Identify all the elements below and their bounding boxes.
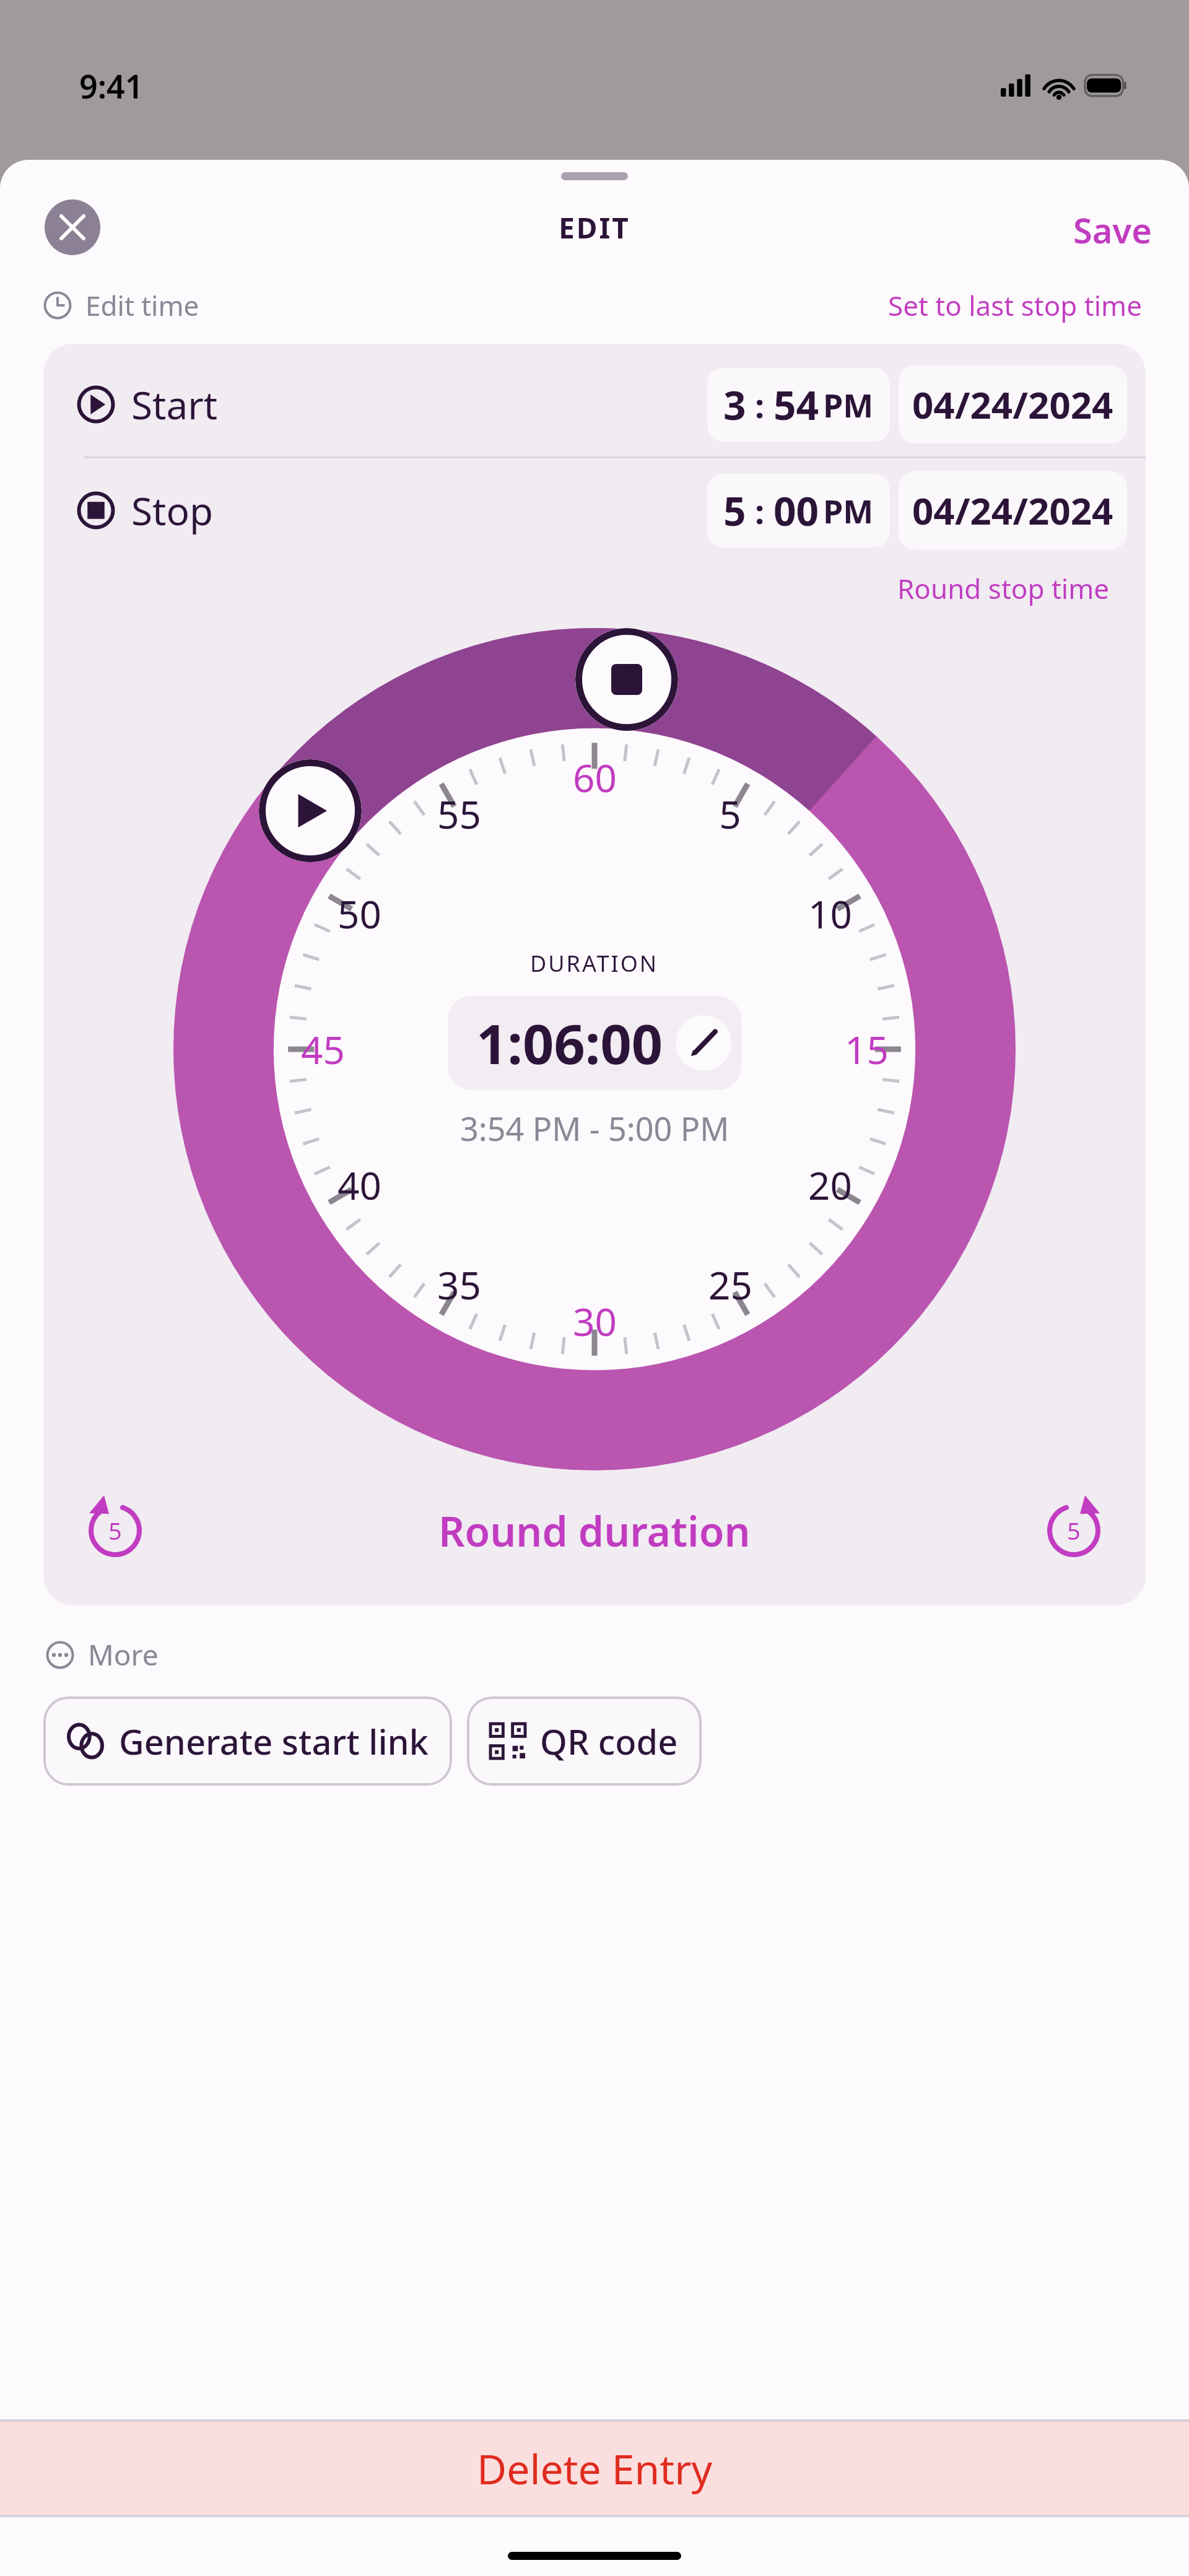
button[interactable]: 04/24/2024 (899, 365, 1127, 443)
staticText: More (88, 1635, 159, 1674)
staticText: 5 (723, 484, 746, 538)
button[interactable]: More (43, 1633, 161, 1677)
staticText: Save (1073, 206, 1152, 248)
button[interactable]: 3 (707, 368, 890, 442)
staticText: 3 (723, 378, 746, 432)
staticText: 3:54 PM - 5:00 PM (460, 1106, 730, 1150)
staticText: : (746, 382, 773, 428)
staticText: Edit time (85, 287, 199, 324)
button[interactable]: Edit time (43, 287, 199, 324)
staticText: 35 (437, 1259, 481, 1311)
staticText: Stop (131, 484, 214, 536)
staticText: DURATION (530, 948, 659, 979)
staticText: : (746, 488, 773, 534)
button[interactable]: 5 (707, 474, 890, 548)
button[interactable]: Start time handle (259, 759, 362, 862)
staticText: 20 (808, 1159, 852, 1211)
button[interactable]: 1:06:00 (448, 996, 741, 1090)
staticText: 1:06:00 (476, 1006, 663, 1080)
staticText: 45 (301, 1023, 345, 1075)
button[interactable]: Round stop time (890, 562, 1117, 614)
staticText: EDIT (559, 208, 630, 247)
staticText: 5 (719, 788, 741, 840)
staticText: 5 (1067, 1514, 1081, 1547)
staticText: 40 (338, 1159, 381, 1211)
staticText: Round stop time (897, 570, 1110, 607)
button[interactable]: Round back 5 minutes (78, 1493, 152, 1568)
staticText: 30 (573, 1295, 617, 1347)
staticText: 9:41 (79, 64, 144, 108)
staticText: 25 (708, 1259, 752, 1311)
button[interactable]: Stop time handle (575, 628, 678, 731)
staticText: 15 (845, 1023, 889, 1075)
button[interactable]: Round forward 5 minutes (1037, 1493, 1111, 1568)
staticText: 60 (573, 751, 617, 803)
staticText: Round duration (438, 1503, 751, 1558)
button[interactable]: Round duration (429, 1493, 760, 1568)
button[interactable]: Generate start link (43, 1696, 452, 1786)
staticText: Delete Entry (477, 2440, 713, 2496)
staticText: 04/24/2024 (912, 379, 1113, 430)
button[interactable]: Close (45, 199, 100, 255)
button[interactable]: 04/24/2024 (899, 471, 1127, 549)
staticText: PM (823, 383, 874, 427)
staticText: Start (131, 378, 218, 430)
button[interactable]: Set to last stop time (884, 283, 1146, 328)
button[interactable]: QR code (467, 1696, 702, 1786)
staticText: 50 (338, 888, 381, 940)
staticText: PM (823, 489, 874, 533)
staticText: Generate start link (119, 1718, 429, 1765)
staticText: 55 (437, 788, 481, 840)
button[interactable]: Delete Entry (0, 2422, 1189, 2515)
button[interactable]: Save (1036, 196, 1189, 258)
button[interactable]: Edit duration (676, 1015, 731, 1071)
staticText: 00 (773, 484, 819, 538)
staticText: Set to last stop time (888, 287, 1142, 324)
staticText: 10 (808, 888, 852, 940)
staticText: 54 (773, 378, 819, 432)
staticText: 04/24/2024 (912, 485, 1113, 536)
staticText: 5 (108, 1514, 122, 1547)
staticText: QR code (540, 1718, 678, 1765)
